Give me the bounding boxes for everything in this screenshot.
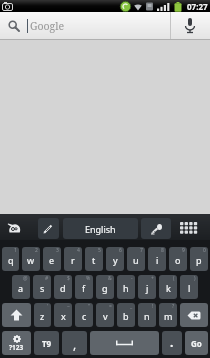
button[interactable]: x: [54, 303, 72, 327]
button[interactable]: v: [96, 303, 114, 327]
button[interactable]: p: [190, 247, 208, 271]
button[interactable]: d: [54, 275, 72, 299]
staticText: y: [113, 254, 118, 266]
button[interactable]: g: [96, 275, 114, 299]
staticText: @: [23, 275, 28, 282]
button[interactable]: w: [22, 247, 40, 271]
staticText: p: [196, 254, 202, 266]
staticText: c: [82, 310, 87, 322]
button[interactable]: [180, 303, 208, 327]
button[interactable]: Go: [185, 331, 208, 355]
staticText: (: [173, 275, 175, 282]
staticText: 7: [140, 247, 143, 254]
staticText: 2: [35, 247, 38, 254]
staticText: =: [109, 303, 112, 310]
staticText: a: [18, 282, 24, 294]
button[interactable]: [180, 222, 198, 235]
staticText: b: [123, 310, 129, 322]
staticText: f: [82, 282, 86, 294]
staticText: k: [166, 282, 171, 294]
staticText: x: [61, 310, 66, 322]
button[interactable]: ?123: [2, 331, 31, 355]
staticText: 9: [182, 247, 185, 254]
staticText: e: [49, 254, 55, 266]
button[interactable]: .: [162, 331, 182, 355]
button[interactable]: j: [138, 275, 156, 299]
staticText: 1: [14, 247, 17, 254]
staticText: ,: [73, 336, 77, 352]
staticText: n: [144, 310, 150, 322]
staticText: o: [175, 254, 181, 266]
button[interactable]: c: [75, 303, 93, 327]
staticText: z: [40, 310, 45, 322]
button[interactable]: a: [12, 275, 30, 299]
button[interactable]: b: [117, 303, 135, 327]
staticText: ): [194, 275, 196, 282]
button[interactable]: [90, 331, 159, 355]
staticText: w: [27, 254, 35, 266]
button[interactable]: h: [117, 275, 135, 299]
button[interactable]: [141, 218, 171, 239]
staticText: 4: [77, 247, 80, 254]
staticText: 0: [203, 247, 206, 254]
staticText: -: [131, 275, 133, 282]
staticText: u: [133, 254, 139, 266]
button[interactable]: f: [75, 275, 93, 299]
button[interactable]: y: [106, 247, 124, 271]
button[interactable]: z: [34, 303, 51, 327]
staticText: &: [108, 275, 112, 282]
button[interactable]: r: [64, 247, 82, 271]
staticText: !: [152, 303, 154, 310]
staticText: _: [130, 303, 133, 310]
staticText: v: [103, 310, 108, 322]
staticText: i: [156, 254, 159, 266]
staticText: 6: [119, 247, 122, 254]
staticText: Go: [191, 338, 202, 349]
staticText: .: [170, 334, 174, 350]
button[interactable]: [38, 218, 59, 239]
button[interactable]: i: [148, 247, 166, 271]
staticText: Google: [30, 19, 65, 33]
button[interactable]: [2, 303, 31, 327]
button[interactable]: T9: [34, 331, 59, 355]
staticText: ?123: [9, 343, 24, 352]
staticText: h: [123, 282, 129, 294]
staticText: g: [102, 282, 108, 294]
button[interactable]: o: [169, 247, 187, 271]
staticText: T9: [42, 338, 52, 349]
staticText: ?: [172, 303, 175, 310]
staticText: ~: [67, 303, 70, 310]
button[interactable]: Google: [0, 12, 210, 40]
staticText: r: [71, 254, 75, 266]
staticText: #: [45, 275, 49, 282]
staticText: 3: [56, 247, 59, 254]
button[interactable]: s: [33, 275, 51, 299]
button[interactable]: n: [138, 303, 156, 327]
button[interactable]: ,: [62, 331, 87, 355]
staticText: %: [86, 275, 91, 282]
staticText: 8: [161, 247, 164, 254]
staticText: l: [188, 282, 191, 294]
staticText: m: [164, 310, 173, 322]
button[interactable]: l: [180, 275, 198, 299]
button[interactable]: e: [43, 247, 61, 271]
staticText: $: [67, 275, 70, 282]
button[interactable]: t: [85, 247, 103, 271]
button[interactable]: m: [159, 303, 177, 327]
staticText: q: [8, 254, 14, 266]
staticText: +: [151, 275, 154, 282]
staticText: t: [92, 254, 96, 266]
button[interactable]: k: [159, 275, 177, 299]
staticText: ": [88, 303, 91, 310]
button[interactable]: q: [2, 247, 19, 271]
button[interactable]: u: [127, 247, 145, 271]
staticText: d: [60, 282, 66, 294]
staticText: 07:27: [187, 1, 208, 12]
button[interactable]: English: [63, 218, 138, 239]
staticText: j: [146, 282, 149, 294]
staticText: English: [85, 223, 116, 235]
staticText: ': [47, 303, 49, 310]
staticText: s: [40, 282, 45, 294]
staticText: 5: [98, 247, 101, 254]
button[interactable]: [7, 222, 21, 234]
